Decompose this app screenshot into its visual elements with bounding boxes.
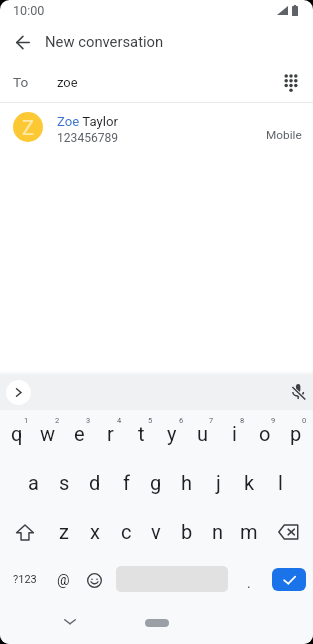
button[interactable] bbox=[234, 508, 265, 556]
button[interactable] bbox=[110, 459, 141, 508]
staticText: h bbox=[181, 471, 193, 494]
button[interactable] bbox=[110, 508, 141, 556]
button[interactable]: Enter bbox=[272, 568, 306, 591]
staticText: 7 bbox=[209, 416, 214, 425]
staticText: New conversation bbox=[45, 33, 164, 50]
button[interactable]: Voice typing off bbox=[282, 376, 312, 406]
staticText: l bbox=[278, 471, 283, 494]
staticText: 9 bbox=[271, 416, 276, 425]
staticText: Z bbox=[22, 116, 34, 139]
staticText: f bbox=[123, 471, 130, 494]
button[interactable]: Hide keyboard bbox=[58, 610, 82, 634]
button[interactable] bbox=[2, 410, 33, 459]
button[interactable]: @ bbox=[47, 557, 79, 603]
staticText: b bbox=[181, 520, 193, 543]
staticText: t bbox=[138, 422, 145, 445]
button[interactable]: Shift bbox=[2, 508, 48, 556]
button[interactable]: Dialpad bbox=[271, 64, 311, 104]
button[interactable] bbox=[265, 459, 296, 508]
button[interactable] bbox=[17, 459, 48, 508]
staticText: Zoe Taylor bbox=[57, 114, 118, 129]
button[interactable] bbox=[64, 410, 95, 459]
staticText: d bbox=[89, 471, 101, 494]
button[interactable] bbox=[280, 410, 311, 459]
staticText: n bbox=[212, 520, 224, 543]
button[interactable] bbox=[79, 459, 110, 508]
button[interactable] bbox=[48, 508, 79, 556]
button[interactable]: Emoji bbox=[78, 557, 110, 603]
staticText: p bbox=[290, 422, 302, 445]
staticText: g bbox=[150, 471, 162, 494]
staticText: 5 bbox=[148, 416, 153, 425]
staticText: z bbox=[59, 520, 69, 543]
button[interactable] bbox=[141, 508, 172, 556]
staticText: c bbox=[121, 520, 132, 543]
button[interactable]: Back bbox=[3, 22, 43, 62]
button[interactable] bbox=[126, 410, 157, 459]
button[interactable] bbox=[234, 459, 265, 508]
staticText: 4 bbox=[117, 416, 122, 425]
button[interactable] bbox=[203, 459, 234, 508]
button[interactable]: Backspace bbox=[265, 508, 311, 556]
button[interactable] bbox=[156, 410, 187, 459]
staticText: q bbox=[11, 422, 23, 445]
button[interactable] bbox=[33, 410, 64, 459]
staticText: m bbox=[240, 520, 258, 543]
staticText: k bbox=[244, 471, 255, 494]
button[interactable] bbox=[141, 459, 172, 508]
staticText: i bbox=[232, 422, 237, 445]
button[interactable] bbox=[218, 410, 249, 459]
staticText: o bbox=[259, 422, 271, 445]
staticText: 3 bbox=[86, 416, 91, 425]
button[interactable]: Expand suggestions bbox=[6, 380, 31, 405]
button[interactable] bbox=[0, 103, 313, 151]
button[interactable]: . bbox=[234, 559, 264, 606]
button[interactable] bbox=[48, 459, 79, 508]
staticText: 6 bbox=[179, 416, 184, 425]
staticText: Mobile bbox=[266, 128, 302, 142]
staticText: x bbox=[90, 520, 100, 543]
button[interactable] bbox=[79, 508, 110, 556]
button[interactable]: ?123 bbox=[2, 556, 48, 603]
staticText: r bbox=[107, 422, 114, 445]
staticText: 8 bbox=[240, 416, 245, 425]
staticText: v bbox=[151, 520, 161, 543]
staticText: e bbox=[74, 422, 85, 445]
button[interactable] bbox=[187, 410, 218, 459]
staticText: 0 bbox=[302, 416, 307, 425]
staticText: @ bbox=[57, 572, 70, 588]
staticText: j bbox=[216, 471, 221, 494]
staticText: s bbox=[59, 471, 70, 494]
staticText: u bbox=[197, 422, 209, 445]
button[interactable] bbox=[203, 508, 234, 556]
button[interactable] bbox=[172, 459, 203, 508]
staticText: 2 bbox=[55, 416, 60, 425]
button[interactable] bbox=[95, 410, 126, 459]
staticText: 1 bbox=[24, 416, 29, 425]
staticText: 10:00 bbox=[13, 3, 45, 18]
staticText: To bbox=[13, 74, 29, 90]
staticText: 123456789 bbox=[57, 131, 119, 145]
staticText: y bbox=[167, 422, 177, 445]
staticText: w bbox=[40, 422, 56, 445]
staticText: . bbox=[247, 575, 251, 591]
staticText: zoe bbox=[57, 75, 78, 90]
staticText: ?123 bbox=[13, 573, 37, 586]
button[interactable] bbox=[172, 508, 203, 556]
button[interactable] bbox=[249, 410, 280, 459]
staticText: a bbox=[28, 471, 39, 494]
